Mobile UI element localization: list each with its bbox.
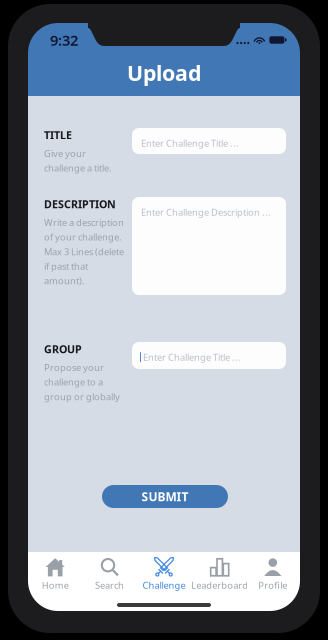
staticText: Write a description bbox=[44, 216, 124, 229]
staticText: GROUP bbox=[44, 342, 82, 356]
staticText: challenge a title. bbox=[44, 162, 112, 174]
staticText: Upload bbox=[127, 59, 201, 87]
staticText: group or globally bbox=[44, 390, 120, 403]
staticText: Leaderboard bbox=[191, 579, 248, 591]
staticText: Give your bbox=[44, 147, 86, 160]
staticText: Enter Challenge Description ... bbox=[141, 206, 271, 218]
button[interactable]: Enter Challenge Title ... bbox=[132, 342, 286, 369]
button[interactable]: Profile bbox=[246, 557, 300, 591]
staticText: Challenge bbox=[142, 579, 185, 591]
button[interactable]: Enter Challenge Description ... bbox=[132, 197, 286, 295]
staticText: Home bbox=[42, 579, 69, 591]
button[interactable]: Leaderboard bbox=[191, 557, 246, 591]
staticText: TITLE bbox=[44, 128, 72, 142]
button[interactable]: SUBMIT bbox=[102, 485, 228, 508]
button[interactable]: Enter Challenge Title ... bbox=[132, 128, 286, 154]
staticText: challenge to a bbox=[44, 376, 103, 388]
staticText: Enter Challenge Title ... bbox=[143, 351, 241, 363]
staticText: Propose your bbox=[44, 361, 104, 374]
staticText: Search bbox=[95, 579, 124, 591]
staticText: 9:32 bbox=[50, 30, 78, 50]
staticText: SUBMIT bbox=[141, 488, 188, 504]
button[interactable]: Home bbox=[28, 557, 82, 591]
staticText: amount). bbox=[44, 274, 85, 287]
button[interactable]: Challenge bbox=[137, 557, 191, 591]
staticText: Profile bbox=[258, 579, 287, 591]
staticText: if past that bbox=[44, 260, 88, 272]
staticText: of your challenge. bbox=[44, 231, 122, 243]
button[interactable]: Search bbox=[82, 557, 137, 591]
staticText: Max 3 Lines (delete bbox=[44, 245, 124, 258]
staticText: DESCRIPTION bbox=[44, 197, 116, 211]
staticText: Enter Challenge Title ... bbox=[141, 137, 239, 149]
